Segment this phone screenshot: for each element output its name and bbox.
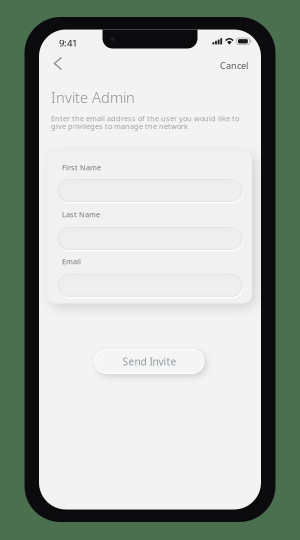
button[interactable]: Back	[46, 50, 69, 76]
button[interactable]: Cancel	[213, 53, 255, 77]
staticText: 9:41	[59, 36, 77, 49]
button[interactable]: Send Invite	[92, 346, 207, 376]
button[interactable]	[57, 225, 243, 251]
staticText: First Name	[62, 162, 101, 172]
button[interactable]	[57, 177, 243, 203]
staticText: Enter the email address of the user you …	[51, 113, 239, 123]
button[interactable]	[57, 272, 243, 298]
staticText: Invite Admin	[51, 87, 135, 107]
staticText: give privileges to manage the network	[51, 121, 188, 131]
staticText: Cancel	[220, 59, 248, 71]
staticText: Send Invite	[122, 355, 176, 368]
staticText: Email	[62, 256, 81, 266]
staticText: Last Name	[62, 209, 100, 219]
